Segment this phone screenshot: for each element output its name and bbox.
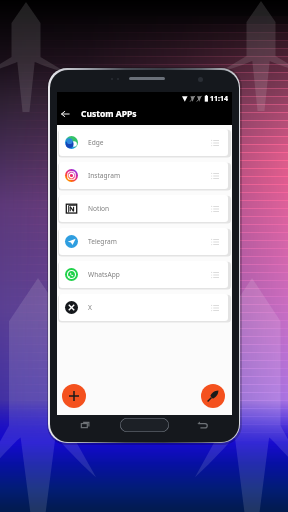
- staticText: Edge: [88, 138, 104, 147]
- button[interactable]: Back: [57, 103, 73, 125]
- button[interactable]: WhatsApp: [59, 261, 228, 288]
- button[interactable]: Recents: [79, 419, 92, 431]
- staticText: Telegram: [88, 237, 117, 246]
- button[interactable]: Back: [196, 419, 209, 431]
- button[interactable]: Edge: [59, 129, 228, 156]
- staticText: WhatsApp: [88, 270, 120, 279]
- staticText: Instagram: [88, 171, 121, 180]
- button[interactable]: Launch rocket: [201, 384, 225, 408]
- button[interactable]: Telegram: [59, 228, 228, 255]
- button[interactable]: Add: [62, 384, 86, 408]
- staticText: Custom APPs: [81, 108, 137, 120]
- button[interactable]: Notion: [59, 195, 228, 222]
- button[interactable]: X: [59, 294, 228, 321]
- staticText: X: [88, 303, 92, 312]
- staticText: 11:14: [210, 94, 228, 104]
- button[interactable]: Instagram: [59, 162, 228, 189]
- staticText: Notion: [88, 204, 110, 213]
